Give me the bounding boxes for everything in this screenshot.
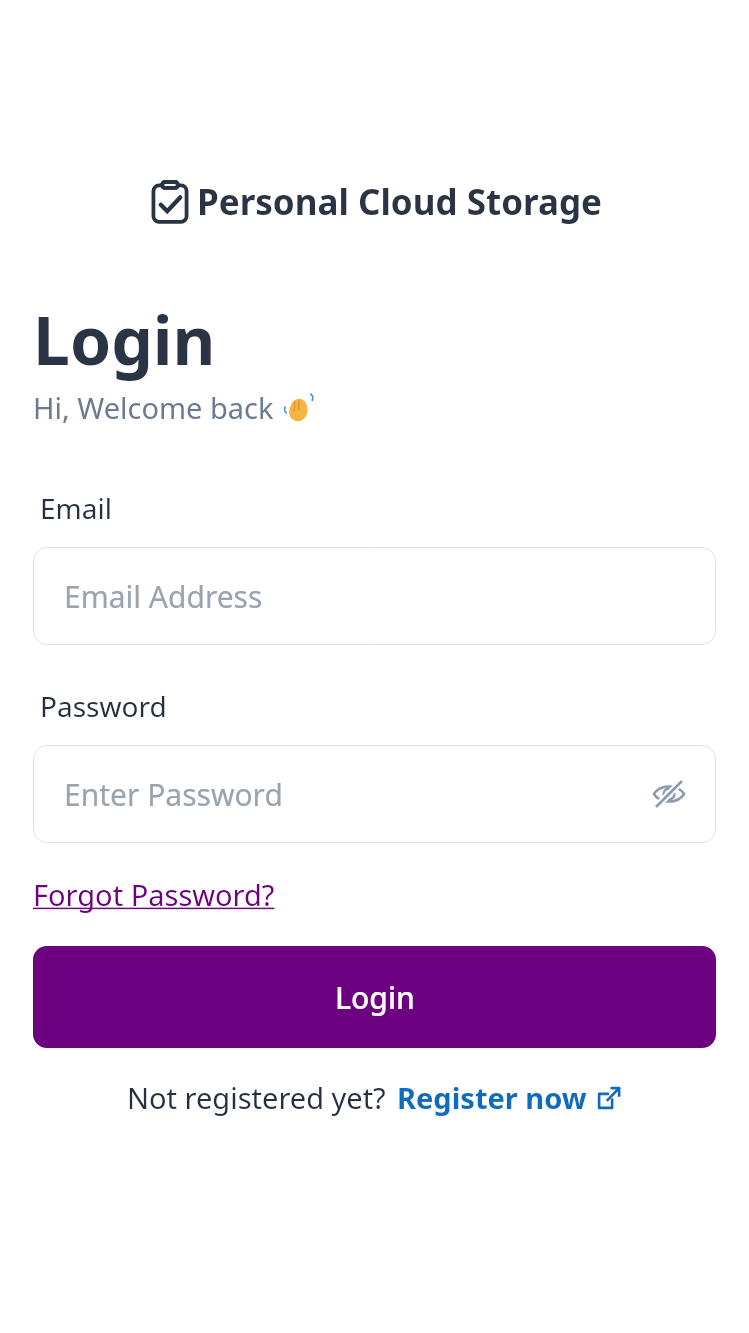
staticText: Enter Password: [64, 774, 283, 815]
button[interactable]: Enter Password: [33, 745, 716, 843]
button[interactable]: Forgot Password?: [33, 875, 275, 914]
staticText: Personal Cloud Storage: [197, 178, 602, 226]
button[interactable]: Register now: [397, 1078, 622, 1117]
staticText: Password: [40, 687, 167, 725]
staticText: Email: [40, 489, 112, 527]
staticText: Register now: [397, 1078, 587, 1117]
staticText: Not registered yet?: [127, 1078, 386, 1117]
button[interactable]: Show password: [646, 771, 692, 817]
staticText: Hi, Welcome back: [33, 388, 274, 427]
staticText: Forgot Password?: [33, 875, 275, 914]
staticText: Login: [335, 977, 415, 1018]
button[interactable]: Login: [33, 946, 716, 1048]
staticText: Email Address: [64, 576, 263, 617]
button[interactable]: Email Address: [33, 547, 716, 645]
staticText: Login: [33, 294, 216, 384]
